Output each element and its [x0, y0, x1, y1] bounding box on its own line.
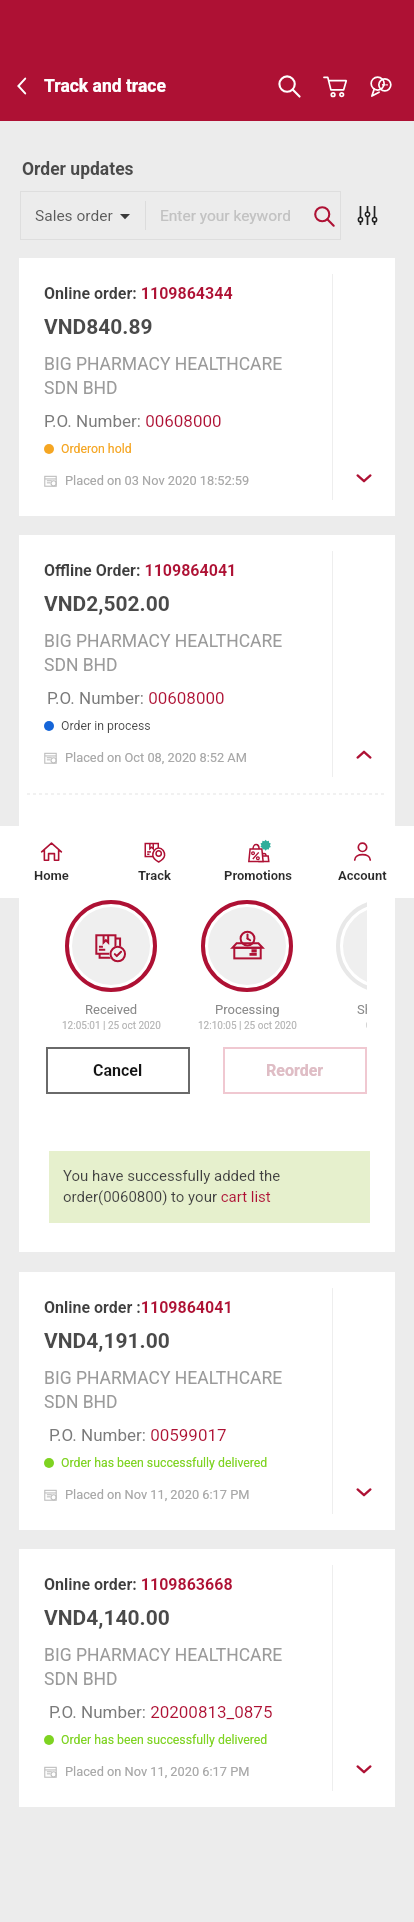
- staticText: Promotions: [224, 868, 293, 883]
- staticText: Track and trace: [44, 76, 166, 97]
- staticText: VND4,140.00: [44, 1606, 170, 1631]
- staticText: Home: [34, 868, 69, 883]
- button[interactable]: Filter: [341, 190, 394, 240]
- staticText: Sales order: [35, 207, 113, 225]
- staticText: P.O. Number: 20200813_0875: [49, 1702, 273, 1722]
- staticText: Placed on Nov 11, 2020 6:17 PM: [65, 1764, 250, 1779]
- button[interactable]: Sales order: [20, 191, 145, 240]
- button[interactable]: Home: [0, 826, 103, 898]
- staticText: You have successfully added the order(00…: [63, 1167, 356, 1206]
- button[interactable]: Cart: [312, 63, 358, 109]
- staticText: VND4,191.00: [44, 1329, 170, 1354]
- button[interactable]: Search: [266, 63, 312, 109]
- staticText: P.O. Number: 00608000: [47, 688, 225, 708]
- button[interactable]: Track: [103, 826, 206, 898]
- staticText: 12:05:01 | 25 oct 2020: [62, 1020, 161, 1030]
- staticText: Received: [85, 1002, 138, 1017]
- staticText: VND2,502.00: [44, 592, 170, 617]
- button[interactable]: Collapse: [333, 535, 395, 793]
- button[interactable]: Search: [307, 191, 341, 240]
- button[interactable]: Account: [310, 826, 414, 898]
- button[interactable]: Back: [0, 63, 44, 109]
- staticText: Order has been successfully delivered: [61, 1456, 268, 1470]
- button[interactable]: Expand: [333, 1272, 395, 1530]
- staticText: Offline Order: 1109864041: [44, 561, 237, 580]
- staticText: BIG PHARMACY HEALTHCARE SDN BHD: [44, 631, 283, 675]
- staticText: BIG PHARMACY HEALTHCARE SDN BHD: [44, 354, 283, 398]
- button[interactable]: Expand: [333, 258, 395, 516]
- staticText: Order has been successfully delivered: [61, 1733, 268, 1747]
- button[interactable]: Promotions: [206, 826, 310, 898]
- staticText: Online order: 1109864344: [44, 284, 233, 303]
- staticText: P.O. Number: 00599017: [49, 1425, 227, 1445]
- staticText: Enter your keyword: [160, 207, 307, 225]
- staticText: 12:10:05 | 25 oct 2020: [198, 1020, 297, 1030]
- staticText: Track: [138, 868, 171, 883]
- staticText: Shipping: [357, 1002, 367, 1017]
- button[interactable]: Cancel: [46, 1047, 190, 1094]
- staticText: Orderon hold: [61, 442, 132, 456]
- button[interactable]: Chat: [358, 63, 404, 109]
- button[interactable]: Reorder: [223, 1047, 367, 1094]
- staticText: Reorder: [266, 1061, 324, 1080]
- staticText: Placed on Oct 08, 2020 8:52 AM: [65, 750, 247, 765]
- staticText: VND840.89: [44, 315, 153, 340]
- staticText: Order in process: [61, 719, 151, 733]
- staticText: P.O. Number: 00608000: [44, 411, 222, 431]
- staticText: BIG PHARMACY HEALTHCARE SDN BHD: [44, 1645, 283, 1689]
- staticText: BIG PHARMACY HEALTHCARE SDN BHD: [44, 1368, 283, 1412]
- button[interactable]: Expand: [333, 1549, 395, 1807]
- staticText: Online order :1109864041: [44, 1298, 233, 1317]
- staticText: Online order: 1109863668: [44, 1575, 233, 1594]
- staticText: Cancel: [93, 1061, 143, 1080]
- staticText: Placed on Nov 11, 2020 6:17 PM: [65, 1487, 250, 1502]
- staticText: Placed on 03 Nov 2020 18:52:59: [65, 473, 250, 488]
- staticText: 00:00:0: [366, 1020, 367, 1030]
- staticText: Order updates: [22, 159, 134, 180]
- staticText: Processing: [215, 1002, 280, 1017]
- staticText: Account: [338, 868, 387, 883]
